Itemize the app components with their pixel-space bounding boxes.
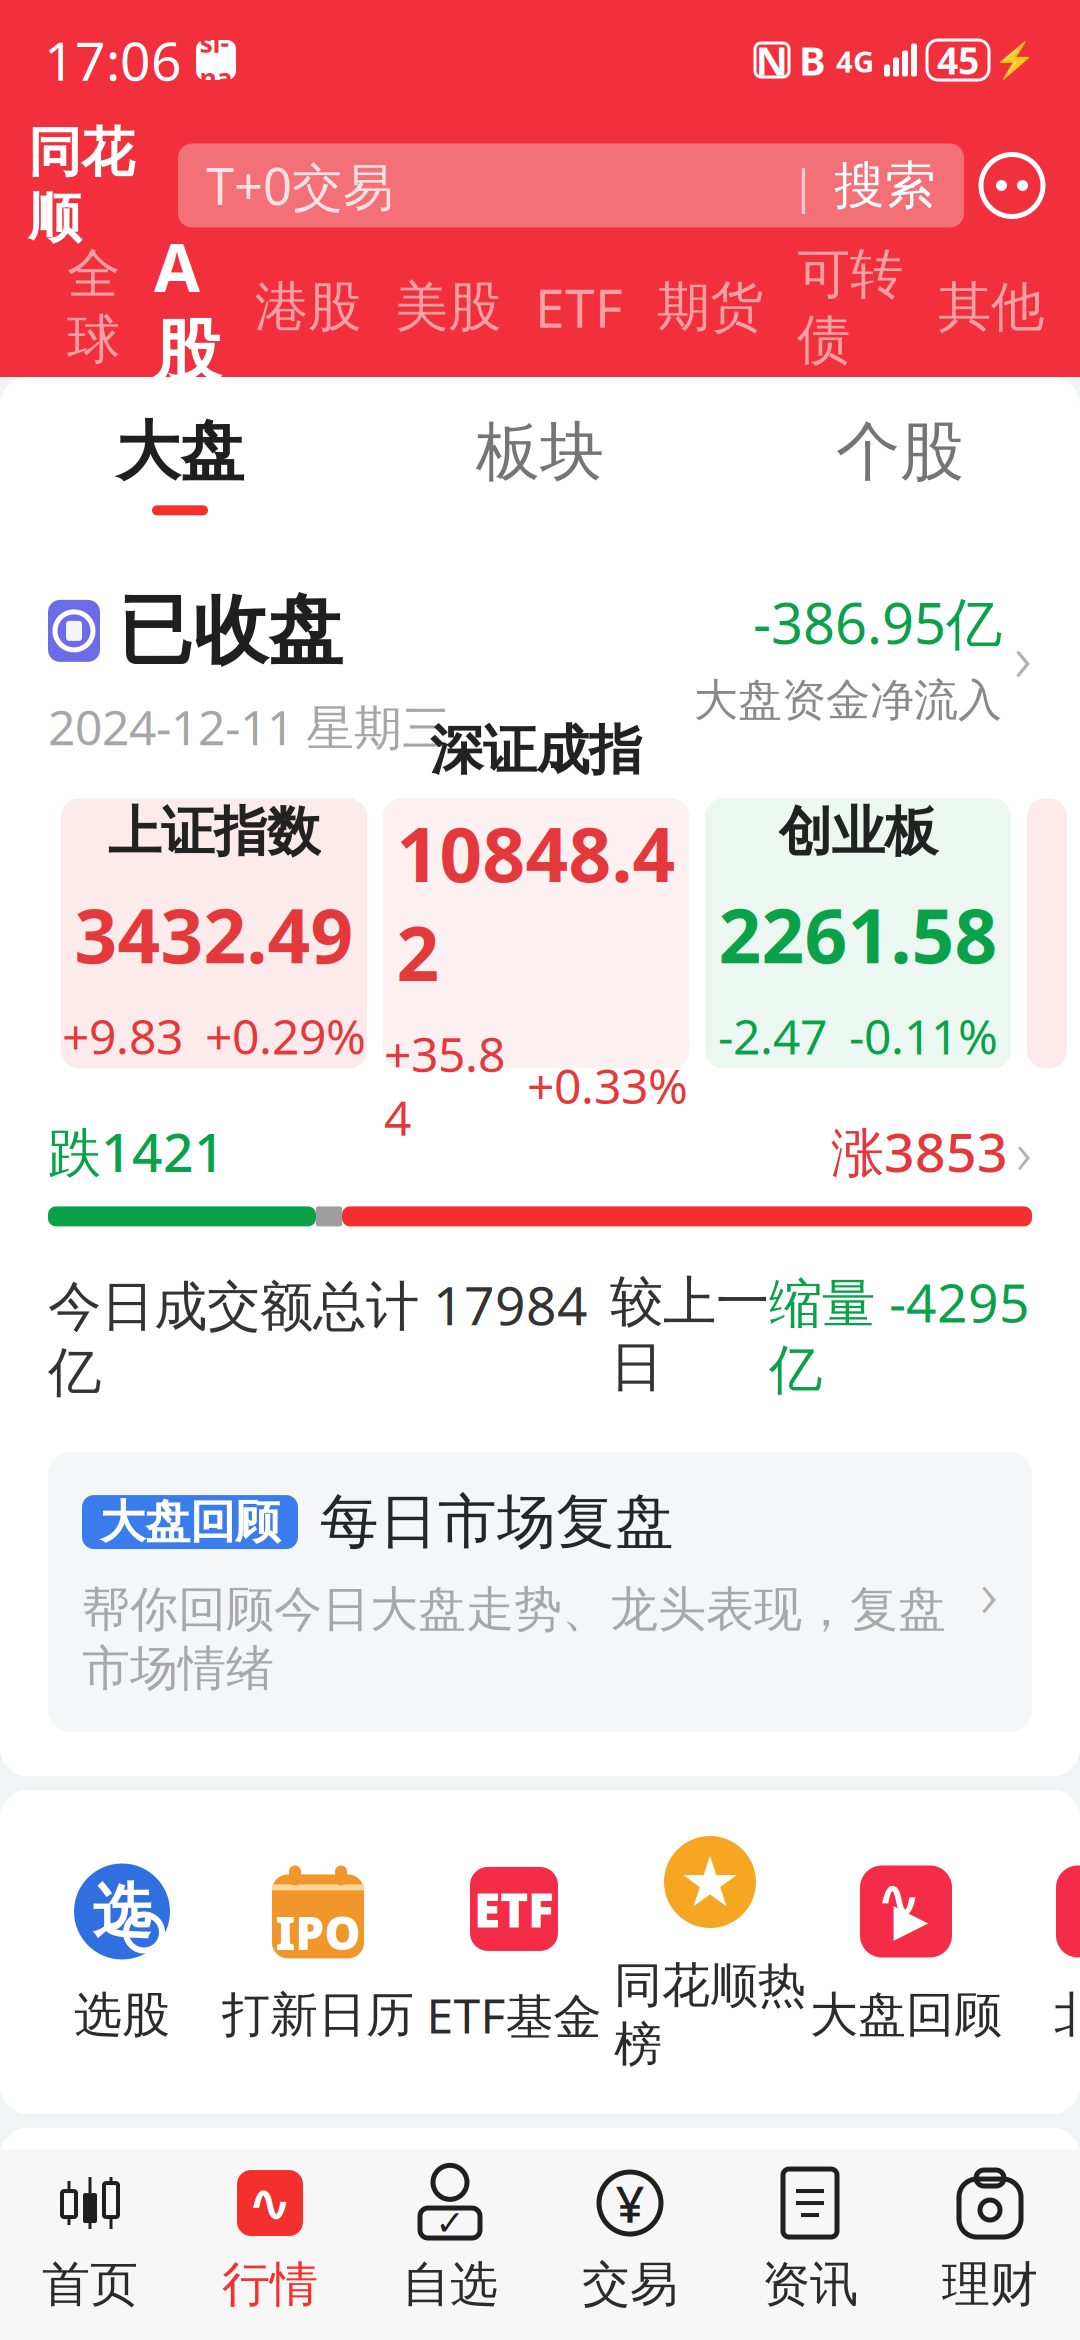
button[interactable]: A股 (137, 257, 238, 357)
staticText: 其他 (938, 274, 1044, 340)
button[interactable]: IPO (220, 1859, 416, 2044)
staticText: +35.84 (384, 1022, 505, 1149)
staticText: 大盘资金净流入 (694, 673, 1002, 727)
staticText: 缩量 -4295亿 (769, 1266, 1030, 1403)
staticText: › (1016, 1112, 1032, 1190)
button[interactable]: 大盘 (0, 399, 360, 529)
button[interactable]: -386.95亿 (694, 585, 1032, 727)
button[interactable]: 深证成指 (383, 798, 689, 1068)
staticText: ETF (474, 1877, 554, 1941)
staticText: 1.3% (922, 2257, 1013, 2340)
staticText: 2261.58 (718, 885, 997, 984)
button[interactable]: 选 (24, 1859, 220, 2044)
staticText: 交易 (582, 2255, 678, 2314)
button[interactable]: 上证指数 (61, 798, 367, 1068)
staticText: 全球 (67, 241, 120, 372)
staticText: 选股 (74, 1985, 170, 2044)
staticText: 帮你回顾今日大盘走势、龙头表现，复盘市场情绪 (82, 1580, 946, 1698)
button[interactable]: T+0交易 (178, 143, 964, 227)
staticText: ∿ (876, 1868, 921, 1929)
button[interactable]: 首页 (0, 2165, 180, 2314)
staticText: 较上一日 (610, 1269, 769, 1400)
staticText: 同花顺 (28, 120, 134, 251)
staticText: 行情 (222, 2255, 318, 2314)
staticText: 自选 (402, 2255, 498, 2314)
staticText: 港股 (255, 274, 361, 340)
staticText: ETF基金 (426, 1983, 601, 2047)
button[interactable]: 个股 (720, 399, 1080, 529)
staticText: ETF (535, 272, 623, 342)
staticText: sina (199, 25, 232, 95)
staticText: 4G (836, 41, 874, 80)
button[interactable]: 全球 (50, 257, 137, 357)
button[interactable]: 涨跌停对比 (65, 2172, 371, 2340)
staticText: 大盘 (116, 413, 244, 491)
staticText: | (791, 155, 816, 216)
staticText: 156 (80, 2265, 212, 2340)
staticText: 大盘回顾 (810, 1985, 1002, 2044)
button[interactable]: 昨日涨停表现 (387, 2172, 693, 2340)
staticText: ∿ (247, 2173, 292, 2233)
staticText: 跌1421 (48, 1116, 225, 1187)
staticText: B (799, 33, 826, 86)
staticText: 创业板 (778, 799, 937, 865)
button[interactable]: ‹ (1004, 1859, 1080, 2044)
staticText: 搜索 (834, 154, 936, 217)
button[interactable]: ¥ (540, 2165, 720, 2314)
staticText: 45 (937, 35, 979, 85)
staticText: 昨日涨停表现 (396, 2189, 661, 2320)
staticText: 今日成交额总计 17984亿 (48, 1269, 588, 1405)
staticText: › (669, 2219, 683, 2290)
button[interactable]: ✓ (360, 2165, 540, 2314)
button[interactable]: 板块 (360, 399, 720, 529)
staticText: -386.95亿 (753, 585, 1002, 659)
button[interactable]: 智能助手 (964, 137, 1060, 233)
staticText: ✓ (435, 2203, 464, 2243)
button[interactable]: ∿ (180, 2165, 360, 2314)
button[interactable]: 大小盘对比 (709, 2172, 1015, 2340)
button[interactable]: 大盘回顾 (48, 1452, 1032, 1732)
staticText: : (212, 2270, 267, 2340)
staticText: 已收盘 (118, 585, 343, 677)
staticText: 选 (92, 1875, 151, 1947)
staticText: 3.00% (431, 2291, 648, 2340)
staticText: 北交 (1054, 1985, 1080, 2044)
button[interactable]: 期货 (640, 257, 780, 357)
staticText: 每日市场复盘 (320, 1486, 674, 1558)
staticText: N (755, 33, 788, 86)
staticText: ⚡ (993, 40, 1036, 80)
button[interactable]: 理财 (900, 2165, 1080, 2314)
staticText: -0.2% (711, 2300, 876, 2340)
button[interactable]: ETF (416, 1857, 612, 2047)
staticText: +0.33% (527, 1053, 688, 1117)
staticText: 涨3853 (831, 1116, 1008, 1187)
staticText: 3432.49 (74, 885, 353, 984)
staticText: › (980, 1548, 998, 1636)
staticText: 大小盘对比 (718, 2222, 983, 2288)
staticText: 大盘回顾 (100, 1494, 280, 1550)
button[interactable]: ★ (612, 1830, 808, 2074)
button[interactable]: 美股 (378, 257, 518, 357)
staticText: T+0交易 (206, 152, 394, 219)
staticText: › (991, 2219, 1005, 2290)
staticText: 涨跌停对比 (74, 2171, 339, 2236)
button[interactable]: 涨3853 (831, 1112, 1032, 1190)
button[interactable]: 创业板 (705, 798, 1011, 1068)
staticText: -2.47 (718, 1004, 827, 1068)
button[interactable]: 港股 (238, 257, 378, 357)
staticText: › (1014, 612, 1032, 700)
button[interactable]: ▶ (808, 1859, 1004, 2044)
staticText: -0.11% (849, 1004, 998, 1068)
button[interactable]: 资讯 (720, 2165, 900, 2314)
staticText: 板块 (476, 413, 604, 491)
staticText: 2024-12-11 星期三 (48, 695, 450, 758)
staticText: 17:06 (44, 25, 182, 95)
staticText: IPO (275, 1902, 360, 1963)
button[interactable]: ETF (518, 257, 640, 357)
button[interactable]: 可转债 (780, 257, 920, 357)
staticText: 深证成指 (430, 718, 642, 783)
staticText: 理财 (942, 2255, 1038, 2314)
staticText: 11 (267, 2265, 355, 2340)
